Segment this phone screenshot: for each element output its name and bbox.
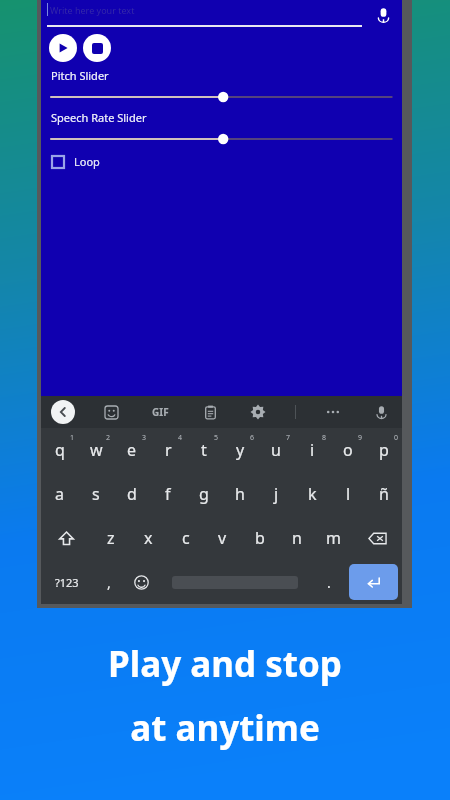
staticText: h	[235, 483, 245, 505]
staticText: Speech Rate Slider	[51, 110, 147, 125]
button[interactable]: x	[130, 516, 167, 560]
button[interactable]: a	[41, 472, 78, 516]
button[interactable]: z	[92, 516, 130, 560]
staticText: s	[92, 483, 100, 505]
staticText: 0	[394, 433, 399, 443]
button[interactable]: y	[222, 428, 258, 472]
button[interactable]: Clipboard	[199, 401, 221, 423]
button[interactable]: f	[150, 472, 186, 516]
button[interactable]: Stickers	[100, 401, 122, 423]
staticText: q	[55, 439, 65, 461]
staticText: 3	[142, 433, 147, 443]
staticText: k	[308, 483, 317, 505]
staticText: Pitch Slider	[51, 68, 109, 83]
staticText: 9	[358, 433, 363, 443]
button[interactable]: d	[114, 472, 150, 516]
button[interactable]: Enter	[349, 564, 398, 600]
button[interactable]: v	[204, 516, 241, 560]
staticText: a	[55, 483, 64, 505]
staticText: m	[326, 527, 341, 549]
button[interactable]: q	[41, 428, 78, 472]
staticText: z	[107, 527, 115, 549]
staticText: at anytime	[130, 704, 320, 752]
button[interactable]: e	[114, 428, 150, 472]
staticText: 7	[286, 433, 291, 443]
staticText: Loop	[74, 154, 100, 169]
staticText: y	[236, 439, 245, 461]
staticText: c	[182, 527, 190, 549]
button[interactable]: Loop	[51, 154, 100, 169]
staticText: Write here your text	[50, 4, 135, 16]
button[interactable]: Write here your text	[47, 3, 362, 27]
button[interactable]: Settings	[247, 401, 269, 423]
button[interactable]: Voice input	[370, 2, 396, 28]
button[interactable]: Shift	[41, 516, 92, 560]
button[interactable]: g	[186, 472, 222, 516]
button[interactable]: o	[330, 428, 366, 472]
button[interactable]: l	[330, 472, 366, 516]
button[interactable]: GIF	[148, 401, 173, 423]
button[interactable]: Stop	[83, 34, 111, 62]
button[interactable]: p	[366, 428, 402, 472]
staticText: i	[310, 439, 315, 461]
staticText: e	[127, 439, 137, 461]
staticText: w	[90, 439, 103, 461]
button[interactable]: w	[78, 428, 114, 472]
button[interactable]: r	[150, 428, 186, 472]
button[interactable]: Voice typing	[370, 401, 392, 423]
button[interactable]: Backspace	[352, 516, 402, 560]
staticText: d	[127, 483, 137, 505]
button[interactable]: i	[294, 428, 330, 472]
button[interactable]: m	[315, 516, 352, 560]
button[interactable]: h	[222, 472, 258, 516]
button[interactable]: ñ	[366, 472, 402, 516]
staticText: o	[343, 439, 353, 461]
button[interactable]: ?123	[41, 560, 92, 604]
button[interactable]: t	[186, 428, 222, 472]
staticText: 5	[214, 433, 219, 443]
staticText: x	[144, 527, 153, 549]
staticText: GIF	[152, 405, 169, 419]
staticText: r	[165, 439, 172, 461]
staticText: g	[199, 483, 209, 505]
staticText: p	[379, 439, 389, 461]
staticText: n	[292, 527, 302, 549]
button[interactable]: n	[278, 516, 315, 560]
staticText: 4	[178, 433, 183, 443]
staticText: u	[271, 439, 281, 461]
button[interactable]: b	[241, 516, 278, 560]
staticText: 2	[106, 433, 111, 443]
staticText: ñ	[379, 483, 389, 505]
staticText: t	[201, 439, 207, 461]
button[interactable]: Pitch Slider	[51, 90, 392, 104]
staticText: b	[255, 527, 265, 549]
staticText: ?123	[55, 575, 79, 590]
button[interactable]: More options	[322, 401, 344, 423]
button[interactable]: s	[78, 472, 114, 516]
button[interactable]: .	[312, 560, 345, 604]
staticText: v	[218, 527, 227, 549]
staticText: .	[327, 573, 331, 592]
button[interactable]: k	[294, 472, 330, 516]
staticText: f	[165, 483, 171, 505]
staticText: 1	[70, 433, 75, 443]
staticText: l	[346, 483, 351, 505]
button[interactable]: Space	[158, 560, 312, 604]
staticText: Play and stop	[108, 640, 342, 688]
button[interactable]: Emoji	[125, 560, 158, 604]
button[interactable]: Speech Rate Slider	[51, 132, 392, 146]
button[interactable]: Play	[49, 34, 77, 62]
button[interactable]: j	[258, 472, 294, 516]
button[interactable]: ,	[92, 560, 125, 604]
staticText: ,	[107, 573, 111, 592]
staticText: j	[274, 483, 279, 505]
staticText: 8	[322, 433, 327, 443]
button[interactable]: u	[258, 428, 294, 472]
button[interactable]: Back	[51, 400, 75, 424]
staticText: 6	[250, 433, 255, 443]
button[interactable]: c	[167, 516, 204, 560]
